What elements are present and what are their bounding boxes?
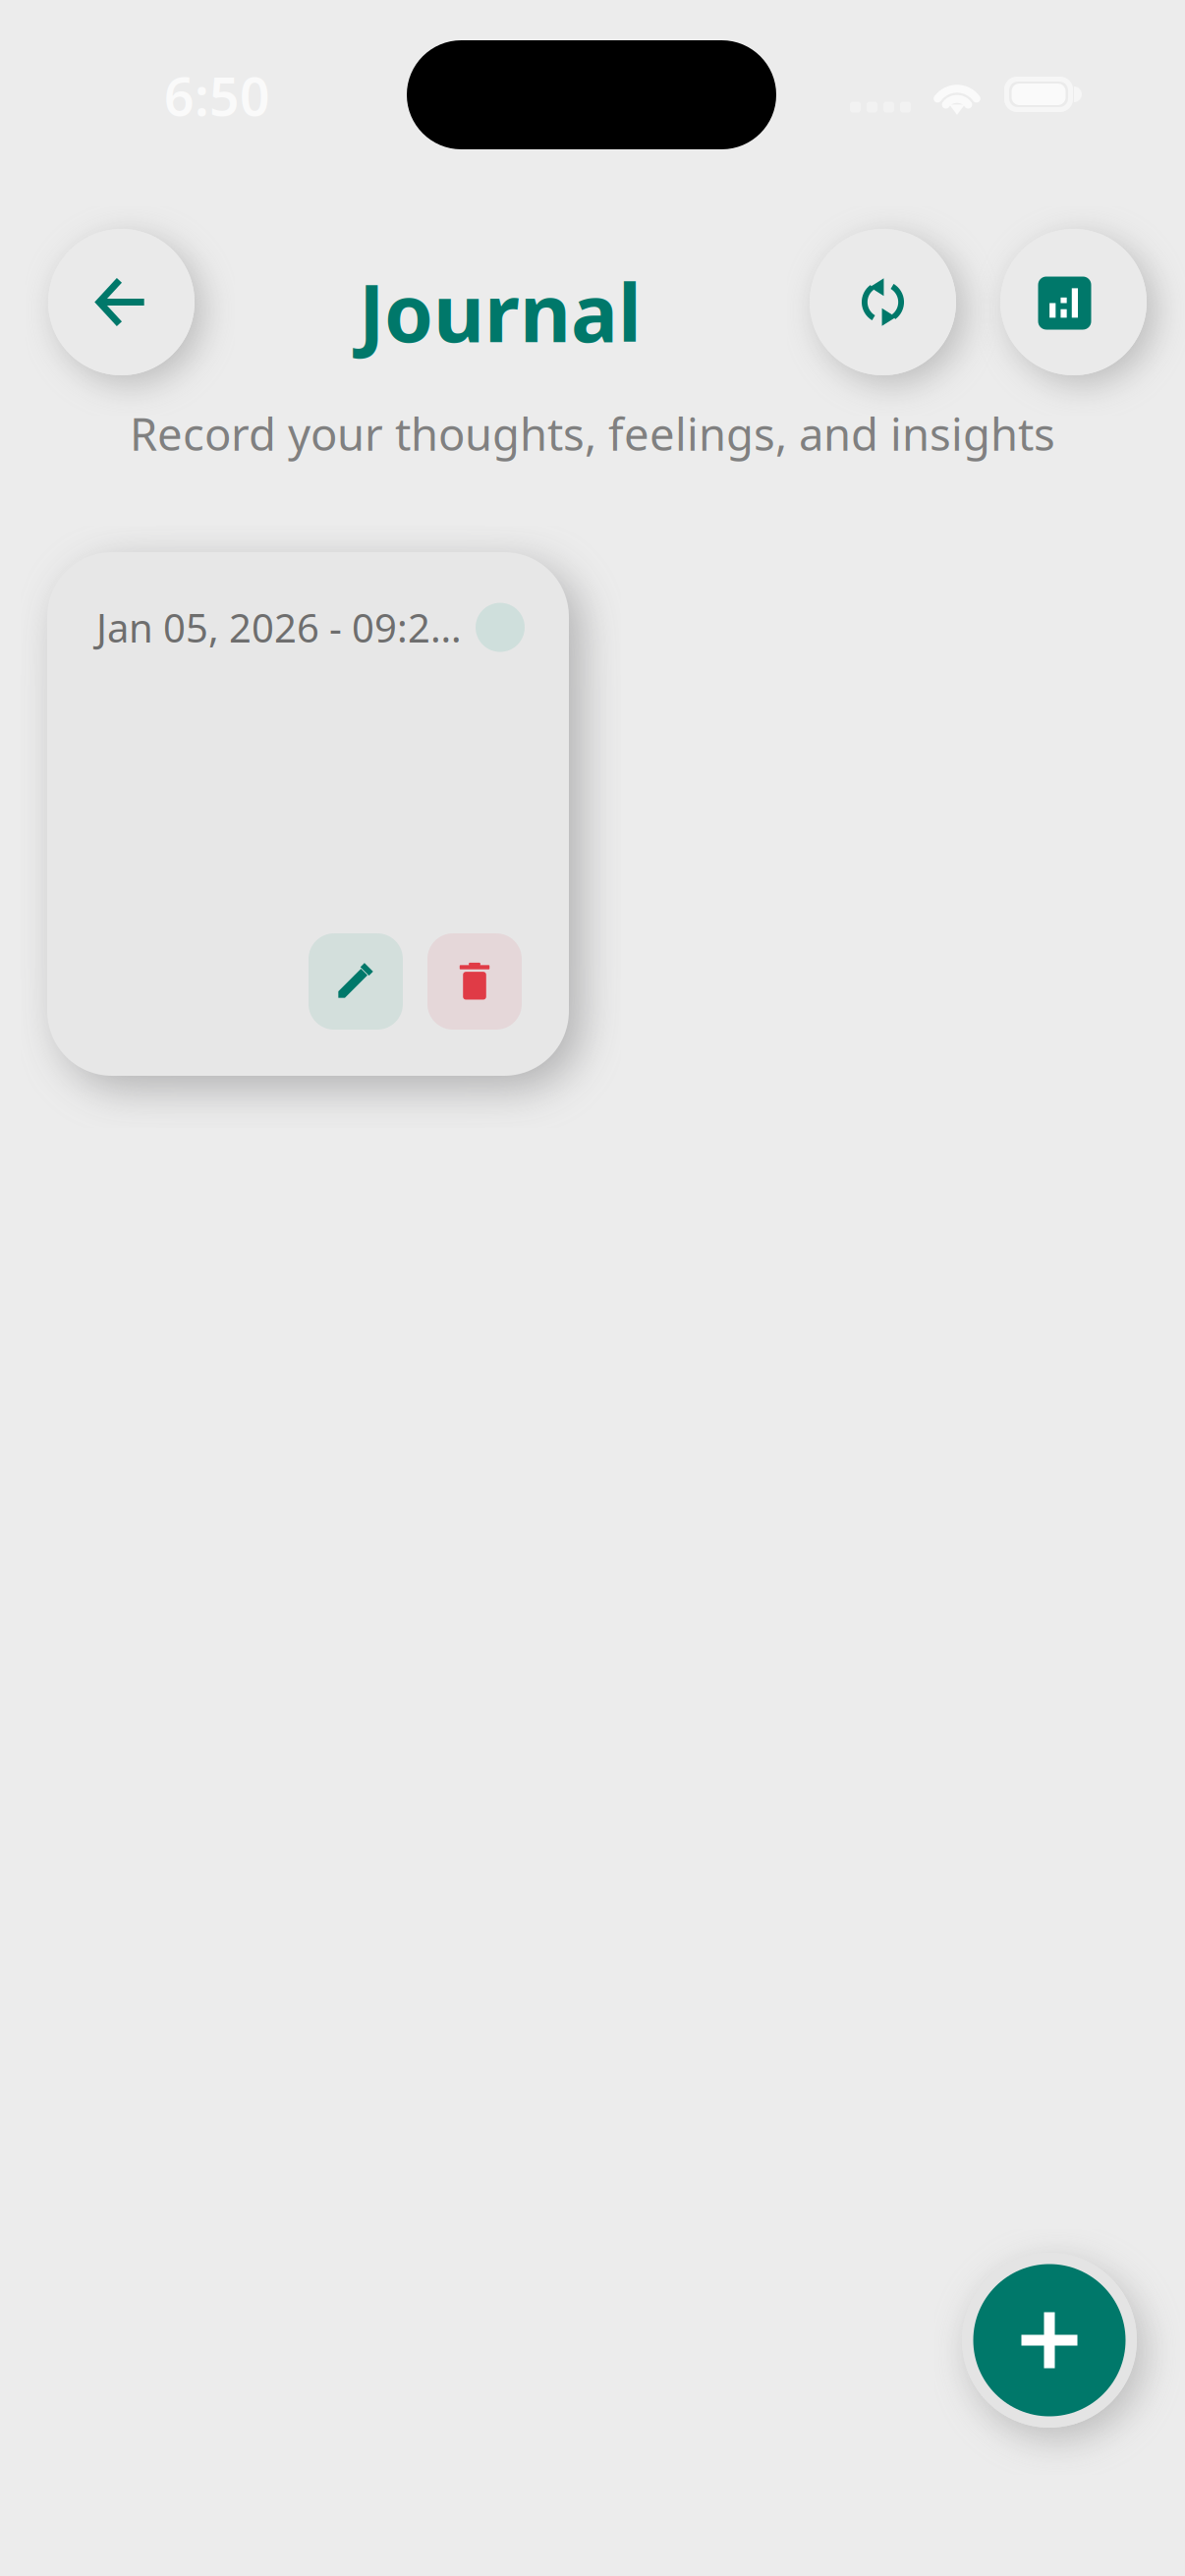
staticText: 6:50 xyxy=(164,61,270,130)
button[interactable]: Delete entry xyxy=(427,933,522,1030)
button[interactable]: Statistics xyxy=(1000,229,1147,375)
staticText: Record your thoughts, feelings, and insi… xyxy=(130,404,1055,463)
button[interactable]: Back xyxy=(48,229,195,375)
staticText: Jan 05, 2026 - 09:2… xyxy=(96,601,462,653)
button[interactable]: Edit entry xyxy=(309,933,403,1030)
button[interactable]: Sync xyxy=(810,229,956,375)
staticText: Journal xyxy=(359,259,642,364)
button[interactable]: New entry xyxy=(962,2253,1137,2428)
